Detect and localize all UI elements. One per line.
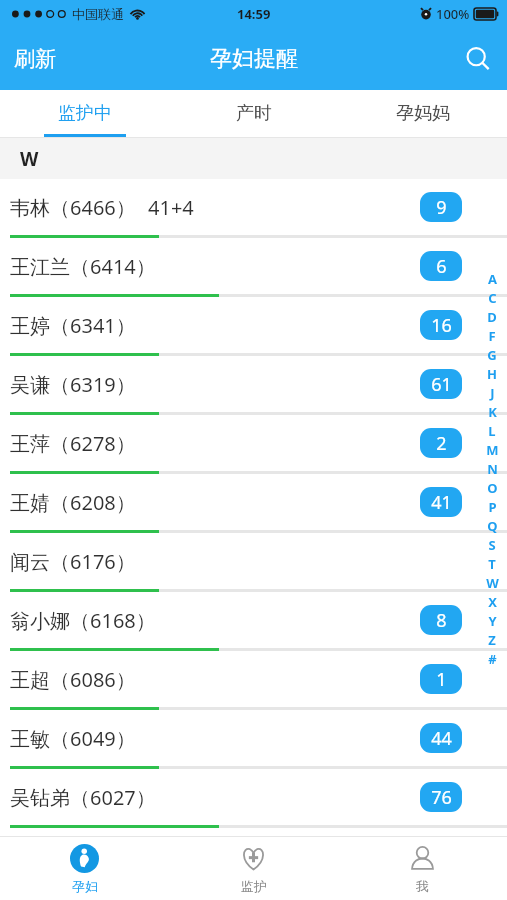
staticText: F <box>488 327 496 345</box>
staticText: 9 <box>436 195 447 220</box>
staticText: 8 <box>436 608 447 633</box>
staticText: 翁小娜（6168） <box>10 607 156 634</box>
staticText: 41+4 <box>148 194 194 221</box>
button[interactable]: 韦林（6466） <box>0 179 507 238</box>
staticText: O <box>487 479 498 497</box>
button[interactable]: Search <box>449 28 507 90</box>
staticText: 王江兰（6414） <box>10 253 156 280</box>
staticText: 产时 <box>236 102 272 125</box>
staticText: P <box>488 498 497 516</box>
staticText: 王超（6086） <box>10 666 136 693</box>
staticText: M <box>486 441 499 459</box>
button[interactable]: 王萍（6278） <box>0 415 507 474</box>
staticText: K <box>488 403 497 421</box>
button[interactable]: 刷新 <box>0 28 70 90</box>
button[interactable]: 监护中 <box>0 90 169 137</box>
button[interactable]: 监护 <box>169 837 338 900</box>
staticText: S <box>488 536 496 554</box>
staticText: 吴钻弟（6027） <box>10 784 156 811</box>
button[interactable]: 王婷（6341） <box>0 297 507 356</box>
staticText: 王婧（6208） <box>10 489 136 516</box>
staticText: 王敏（6049） <box>10 725 136 752</box>
staticText: 孕妇 <box>72 878 98 894</box>
staticText: X <box>488 593 497 611</box>
staticText: Q <box>487 517 498 535</box>
staticText: 监护中 <box>58 102 112 125</box>
staticText: H <box>487 365 497 383</box>
button[interactable]: 产时 <box>169 90 338 137</box>
button[interactable]: 王超（6086） <box>0 651 507 710</box>
staticText: 王萍（6278） <box>10 430 136 457</box>
button[interactable]: 孕妇 <box>0 837 169 900</box>
button[interactable]: 王江兰（6414） <box>0 238 507 297</box>
staticText: Z <box>488 631 496 649</box>
staticText: # <box>488 650 497 668</box>
button[interactable]: 翁小娜（6168） <box>0 592 507 651</box>
staticText: 1 <box>436 667 447 692</box>
button[interactable]: 孕妈妈 <box>338 90 507 137</box>
staticText: 2 <box>436 431 447 456</box>
button[interactable]: 闻云（6176） <box>0 533 507 592</box>
staticText: C <box>488 289 497 307</box>
staticText: 44 <box>431 726 452 751</box>
staticText: J <box>490 384 495 402</box>
staticText: 41 <box>431 490 452 515</box>
staticText: 6 <box>436 254 447 279</box>
staticText: W <box>486 574 499 592</box>
staticText: 76 <box>431 785 452 810</box>
staticText: L <box>488 422 496 440</box>
staticText: 我 <box>416 878 429 894</box>
staticText: N <box>487 460 498 478</box>
staticText: 孕妇提醒 <box>210 45 298 73</box>
staticText: 14:59 <box>237 5 271 23</box>
staticText: 闻云（6176） <box>10 548 136 575</box>
staticText: T <box>488 555 496 573</box>
staticText: 韦林（6466） <box>10 194 136 221</box>
staticText: D <box>487 308 497 326</box>
staticText: 吴谦（6319） <box>10 371 136 398</box>
button[interactable]: Alphabet index <box>481 270 503 668</box>
button[interactable]: 吴钻弟（6027） <box>0 769 507 828</box>
staticText: 100% <box>436 5 470 23</box>
staticText: 监护 <box>241 878 267 894</box>
staticText: 61 <box>431 372 452 397</box>
staticText: 孕妈妈 <box>396 102 450 125</box>
staticText: W <box>20 146 39 172</box>
staticText: 刷新 <box>14 46 56 72</box>
staticText: 王婷（6341） <box>10 312 136 339</box>
button[interactable]: 王婧（6208） <box>0 474 507 533</box>
button[interactable]: 我 <box>338 837 507 900</box>
staticText: G <box>487 346 497 364</box>
button[interactable]: 王敏（6049） <box>0 710 507 769</box>
button[interactable]: 吴谦（6319） <box>0 356 507 415</box>
staticText: Y <box>488 612 497 630</box>
staticText: 16 <box>431 313 452 338</box>
staticText: A <box>488 270 497 288</box>
staticText: 中国联通 <box>72 6 124 22</box>
